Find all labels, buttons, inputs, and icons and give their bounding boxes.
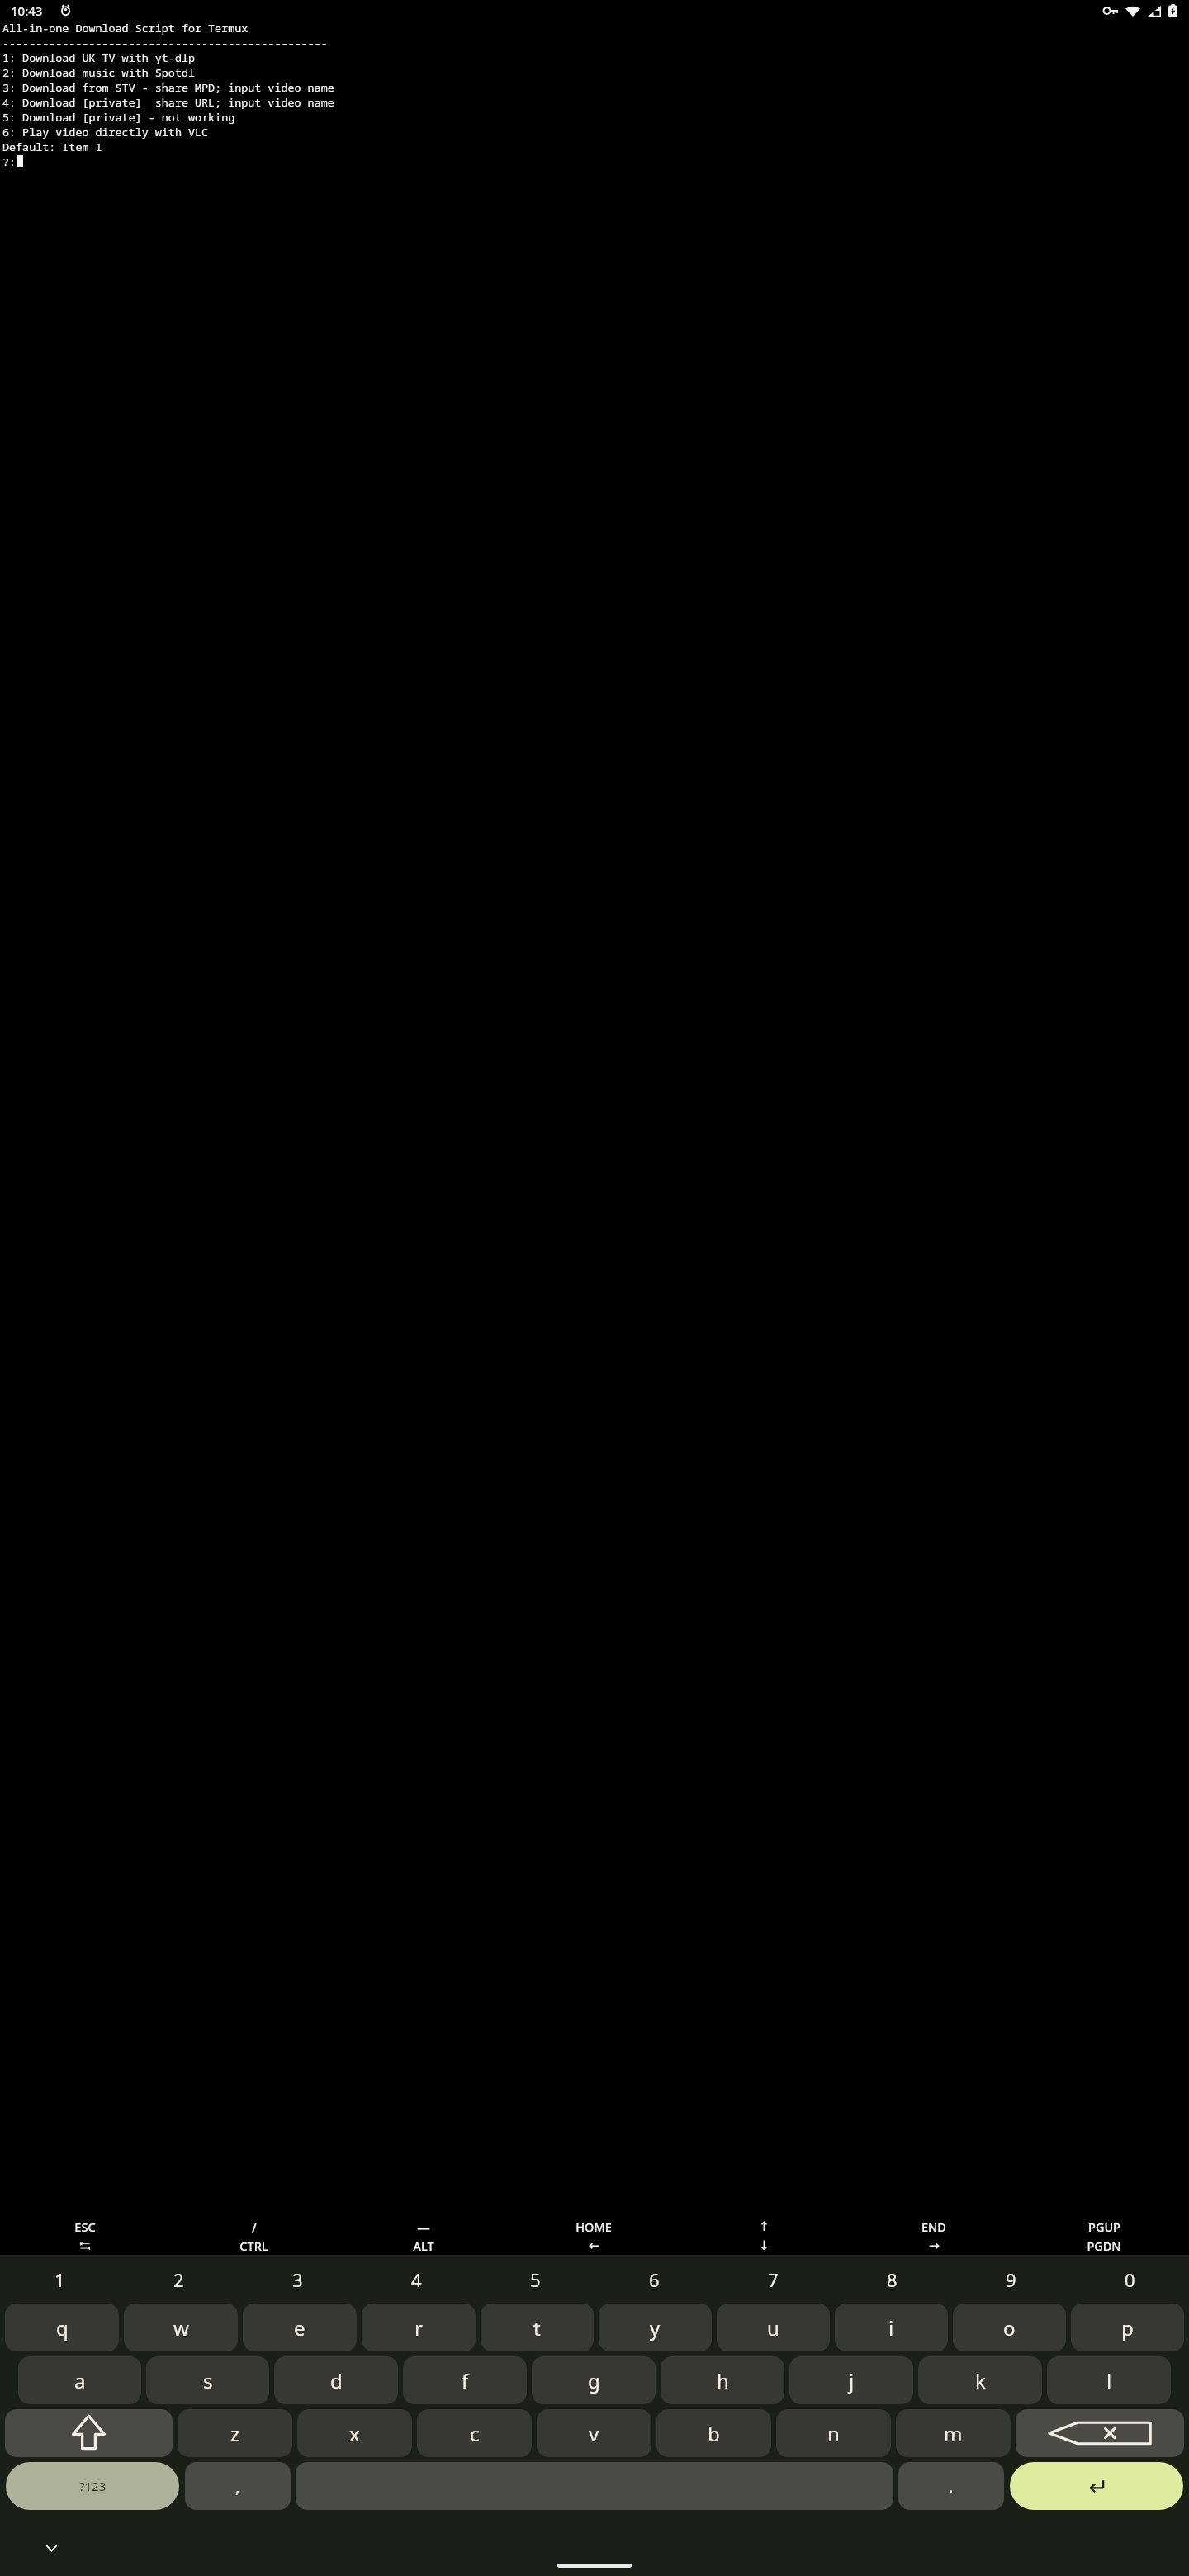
button[interactable]: k (918, 2356, 1042, 2404)
staticText: o (1003, 2314, 1016, 2342)
button[interactable]: m (896, 2409, 1011, 2457)
button[interactable]: o (953, 2304, 1066, 2351)
staticText: CTRL (239, 2237, 268, 2254)
button[interactable]: 8 (832, 2258, 951, 2301)
button[interactable]: c (417, 2409, 532, 2457)
staticText: l (1106, 2367, 1112, 2394)
button[interactable]: v (537, 2409, 651, 2457)
other: Wi-Fi (1125, 6, 1140, 17)
button[interactable]: e (243, 2304, 357, 2351)
staticText: 2 (173, 2267, 184, 2292)
staticText: u (767, 2314, 779, 2342)
button[interactable]: p (1071, 2304, 1184, 2351)
other: VPN (1103, 7, 1118, 16)
button[interactable]: i (835, 2304, 948, 2351)
button[interactable]: s (146, 2356, 269, 2404)
button[interactable]: ↓ (679, 2236, 849, 2255)
staticText: e (294, 2314, 306, 2342)
button[interactable]: Tab (0, 2236, 169, 2255)
button[interactable]: CTRL (169, 2236, 339, 2255)
button[interactable]: END (849, 2218, 1019, 2236)
button[interactable]: 2 (119, 2258, 238, 2301)
button[interactable]: ↑ (679, 2218, 849, 2236)
button[interactable]: n (776, 2409, 891, 2457)
staticText: ----------------------------------------… (2, 36, 328, 50)
other: Battery charging (1168, 4, 1177, 17)
staticText: ↓ (759, 2238, 770, 2253)
staticText: PGDN (1087, 2237, 1121, 2254)
staticText: r (414, 2314, 423, 2342)
button[interactable]: , (185, 2462, 291, 2510)
staticText: g (588, 2367, 600, 2394)
staticText: k (975, 2367, 986, 2394)
button[interactable]: 9 (951, 2258, 1070, 2301)
staticText: n (827, 2420, 840, 2447)
button[interactable]: ← (509, 2236, 679, 2255)
button[interactable]: / (169, 2218, 339, 2236)
staticText: f (462, 2367, 469, 2394)
button[interactable]: 4 (357, 2258, 476, 2301)
button[interactable]: 1 (0, 2258, 119, 2301)
button[interactable]: u (717, 2304, 830, 2351)
button[interactable]: 7 (713, 2258, 832, 2301)
button[interactable]: h (661, 2356, 784, 2404)
button[interactable]: 5 (476, 2258, 594, 2301)
staticText: END (921, 2218, 946, 2235)
staticText: t (533, 2314, 541, 2342)
other: Tab (79, 2240, 91, 2252)
button[interactable]: t (481, 2304, 594, 2351)
staticText: 6: Play video directly with VLC (2, 125, 209, 140)
staticText: 2: Download music with Spotdl (2, 65, 195, 80)
staticText: m (944, 2420, 963, 2447)
staticText: 8 (887, 2267, 898, 2292)
button[interactable]: → (849, 2236, 1019, 2255)
button[interactable]: . (898, 2462, 1004, 2510)
button[interactable]: j (789, 2356, 913, 2404)
button[interactable]: ESC (0, 2218, 169, 2236)
staticText: h (717, 2367, 729, 2394)
button[interactable]: 0 (1070, 2258, 1189, 2301)
button[interactable]: z (178, 2409, 292, 2457)
staticText: 3 (292, 2267, 303, 2292)
button[interactable]: w (124, 2304, 238, 2351)
button[interactable]: y (599, 2304, 712, 2351)
button[interactable]: f (403, 2356, 527, 2404)
button[interactable]: ?123 (6, 2462, 179, 2510)
button[interactable]: HOME (509, 2218, 679, 2236)
staticText: 6 (649, 2267, 660, 2292)
button[interactable]: 3 (238, 2258, 357, 2301)
staticText: ← (589, 2238, 599, 2253)
button[interactable]: a (18, 2356, 141, 2404)
button[interactable]: Hide keyboard (40, 2536, 63, 2559)
staticText: HOME (576, 2218, 612, 2235)
button[interactable]: g (532, 2356, 656, 2404)
button[interactable]: ALT (339, 2236, 509, 2255)
other: Termux notification (59, 4, 72, 17)
button[interactable]: — (339, 2218, 509, 2236)
button[interactable]: r (362, 2304, 476, 2351)
staticText: 0 (1125, 2267, 1135, 2292)
button[interactable]: x (297, 2409, 412, 2457)
staticText: ?: (2, 154, 17, 169)
staticText: x (349, 2420, 360, 2447)
button[interactable]: q (5, 2304, 119, 2351)
button[interactable]: PGDN (1019, 2236, 1189, 2255)
staticText: , (235, 2475, 240, 2498)
staticText: 4: Download [private] share URL; input v… (2, 95, 334, 110)
button[interactable]: l (1047, 2356, 1171, 2404)
staticText: 5: Download [private] - not working (2, 110, 235, 125)
staticText: s (203, 2367, 213, 2394)
staticText: → (929, 2238, 940, 2253)
button[interactable]: 6 (594, 2258, 713, 2301)
staticText: y (650, 2314, 661, 2342)
button[interactable]: b (656, 2409, 771, 2457)
staticText: 1: Download UK TV with yt-dlp (2, 50, 195, 65)
button[interactable]: Enter (1010, 2462, 1183, 2510)
button[interactable]: Shift (5, 2409, 173, 2457)
button[interactable]: PGUP (1019, 2218, 1189, 2236)
button[interactable]: d (274, 2356, 398, 2404)
button[interactable]: Space (296, 2462, 893, 2510)
staticText: 3: Download from STV - share MPD; input … (2, 80, 334, 95)
button[interactable]: Backspace (1016, 2409, 1184, 2457)
staticText: PGUP (1088, 2218, 1120, 2235)
